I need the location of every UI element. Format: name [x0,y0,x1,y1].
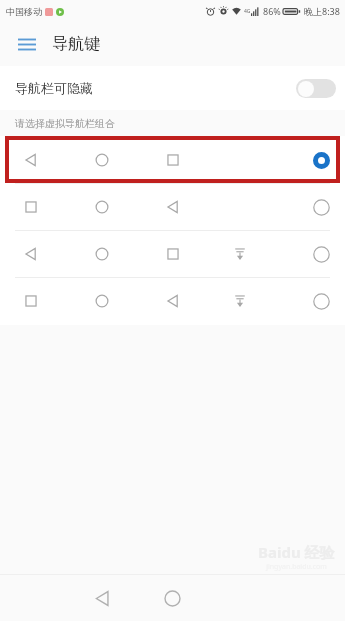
staticText: 中国移动 [6,6,42,17]
button[interactable]: Select combination [0,230,345,277]
staticText: 请选择虚拟导航栏组合 [15,117,115,130]
staticText: 4G [244,8,251,15]
button[interactable]: Select combination [0,136,345,183]
button[interactable]: Select combination [310,243,332,265]
staticText: 导航键 [52,34,100,54]
button[interactable]: Select combination [310,149,332,171]
button[interactable]: Select combination [0,183,345,230]
staticText: 导航栏可隐藏 [15,80,93,96]
button[interactable]: Select combination [0,277,345,324]
button[interactable]: Select combination [310,196,332,218]
staticText: Baidu 经验 [258,542,335,562]
staticText: 晚上8:38 [304,5,340,17]
button[interactable]: Back [85,581,119,615]
staticText: 86% [263,5,281,17]
button[interactable]: Select combination [310,290,332,312]
button[interactable]: 导航栏可隐藏 [0,66,345,110]
button[interactable]: Menu [10,27,44,61]
button[interactable]: Home [155,581,189,615]
button[interactable]: Navigation bar hideable toggle [296,79,336,98]
